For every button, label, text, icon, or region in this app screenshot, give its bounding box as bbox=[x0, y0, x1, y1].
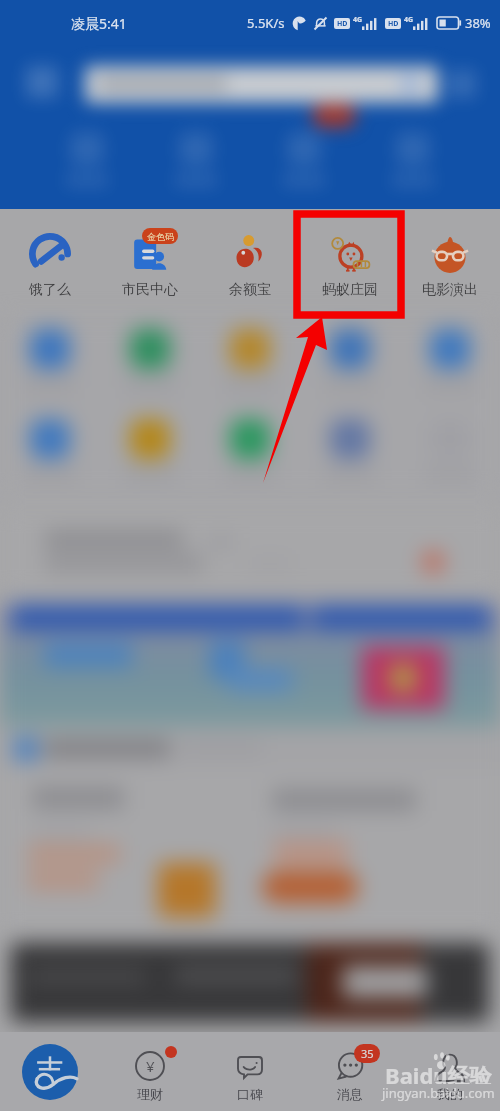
staticText: 蚂蚁庄园 bbox=[322, 281, 378, 299]
staticText: 金色码 bbox=[147, 231, 174, 242]
button[interactable]: 消息 bbox=[300, 1032, 400, 1111]
staticText: HD bbox=[337, 19, 348, 29]
button[interactable]: 饿了么 bbox=[0, 209, 100, 317]
button[interactable]: 蚂蚁庄园 bbox=[300, 209, 400, 317]
button[interactable]: 首页 bbox=[0, 1032, 100, 1111]
staticText: 消息 bbox=[337, 1086, 363, 1102]
staticText: ¥ bbox=[146, 1056, 155, 1076]
staticText: 口碑 bbox=[237, 1086, 263, 1102]
staticText: 余额宝 bbox=[229, 281, 271, 299]
staticText: Baidu经验 bbox=[385, 1060, 492, 1084]
staticText: 市民中心 bbox=[122, 281, 178, 299]
button[interactable]: 金色码 bbox=[100, 209, 200, 317]
staticText: 我的 bbox=[437, 1086, 463, 1102]
staticText: 电影演出 bbox=[422, 281, 478, 299]
button[interactable]: 我的 bbox=[400, 1032, 500, 1111]
staticText: 5.5K/s bbox=[247, 14, 285, 32]
staticText: jingyan.baidu.com bbox=[382, 1084, 495, 1102]
button[interactable]: 理财 bbox=[100, 1032, 200, 1111]
staticText: 理财 bbox=[137, 1086, 163, 1102]
button[interactable]: 口碑 bbox=[200, 1032, 300, 1111]
button[interactable]: 电影演出 bbox=[400, 209, 500, 317]
staticText: 38% bbox=[465, 14, 491, 32]
staticText: HD bbox=[388, 19, 399, 29]
staticText: 凌晨5:41 bbox=[71, 14, 127, 33]
staticText: 饿了么 bbox=[29, 281, 71, 299]
staticText: 4G bbox=[353, 15, 363, 25]
button[interactable]: 余额宝 bbox=[200, 209, 300, 317]
staticText: 35 bbox=[361, 1046, 374, 1061]
staticText: 4G bbox=[404, 15, 414, 25]
